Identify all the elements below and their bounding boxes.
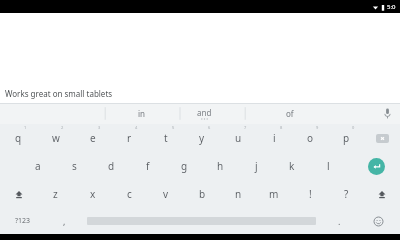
button[interactable]: n: [220, 180, 256, 208]
button[interactable]: d: [93, 152, 130, 180]
button[interactable]: i: [256, 124, 292, 152]
button[interactable]: e: [74, 124, 111, 152]
button[interactable]: t: [148, 124, 184, 152]
staticText: d: [108, 159, 115, 173]
staticText: 1: [24, 125, 27, 130]
button[interactable]: m: [256, 180, 292, 208]
button[interactable]: in: [119, 103, 165, 124]
staticText: z: [53, 187, 58, 201]
staticText: i: [273, 131, 276, 145]
staticText: o: [307, 131, 314, 145]
button[interactable]: k: [274, 152, 310, 180]
button[interactable]: x: [74, 180, 111, 208]
staticText: 4: [135, 125, 138, 130]
staticText: 0: [352, 125, 355, 130]
staticText: 5: [172, 125, 175, 130]
button[interactable]: z: [37, 180, 74, 208]
button[interactable]: v: [148, 180, 184, 208]
staticText: c: [127, 187, 132, 201]
button[interactable]: s: [56, 152, 93, 180]
button[interactable]: Enter: [353, 152, 400, 180]
button[interactable]: ?123: [0, 208, 46, 234]
button[interactable]: Voice input: [374, 103, 400, 124]
button[interactable]: g: [166, 152, 202, 180]
staticText: q: [15, 131, 22, 145]
staticText: k: [289, 159, 295, 173]
staticText: of: [286, 108, 294, 119]
button[interactable]: Emoji: [357, 208, 400, 234]
button[interactable]: of: [260, 103, 320, 124]
button[interactable]: ,: [46, 208, 82, 234]
button[interactable]: ?: [328, 180, 364, 208]
staticText: r: [127, 131, 132, 145]
button[interactable]: h: [202, 152, 238, 180]
staticText: j: [255, 159, 258, 173]
staticText: ?123: [15, 216, 31, 226]
button[interactable]: Backspace: [364, 124, 400, 152]
staticText: .: [338, 215, 341, 227]
button[interactable]: u: [220, 124, 256, 152]
button[interactable]: c: [111, 180, 148, 208]
button[interactable]: q: [0, 124, 37, 152]
staticText: Works great on small tablets: [5, 88, 113, 99]
button[interactable]: !: [292, 180, 328, 208]
staticText: p: [343, 131, 350, 145]
button[interactable]: b: [184, 180, 220, 208]
button[interactable]: r: [111, 124, 148, 152]
staticText: s: [72, 159, 77, 173]
staticText: and: [197, 107, 212, 118]
staticText: x: [90, 187, 96, 201]
staticText: 6: [208, 125, 211, 130]
button[interactable]: y: [184, 124, 220, 152]
staticText: 9: [316, 125, 319, 130]
staticText: ?: [344, 187, 349, 201]
staticText: ,: [63, 215, 66, 227]
button[interactable]: Space: [82, 208, 321, 234]
staticText: w: [52, 131, 60, 145]
staticText: b: [199, 187, 206, 201]
staticText: !: [309, 187, 312, 201]
button[interactable]: o: [292, 124, 328, 152]
button[interactable]: Shift: [364, 180, 400, 208]
staticText: 5:0: [387, 3, 396, 11]
staticText: 2: [61, 125, 64, 130]
staticText: 7: [244, 125, 247, 130]
staticText: m: [269, 187, 279, 201]
button[interactable]: and: [174, 103, 234, 124]
button[interactable]: p: [328, 124, 364, 152]
staticText: h: [217, 159, 224, 173]
staticText: y: [199, 131, 205, 145]
staticText: t: [164, 131, 168, 145]
staticText: l: [327, 159, 330, 173]
staticText: 8: [280, 125, 283, 130]
staticText: v: [163, 187, 169, 201]
staticText: a: [35, 159, 41, 173]
button[interactable]: f: [130, 152, 166, 180]
staticText: g: [181, 159, 188, 173]
button[interactable]: w: [37, 124, 74, 152]
staticText: 3: [98, 125, 101, 130]
button[interactable]: .: [321, 208, 357, 234]
staticText: e: [90, 131, 96, 145]
staticText: f: [146, 159, 150, 173]
staticText: in: [138, 108, 146, 119]
button[interactable]: l: [310, 152, 346, 180]
staticText: n: [235, 187, 242, 201]
button[interactable]: a: [19, 152, 56, 180]
staticText: u: [235, 131, 242, 145]
button[interactable]: Shift: [0, 180, 37, 208]
button[interactable]: j: [238, 152, 274, 180]
